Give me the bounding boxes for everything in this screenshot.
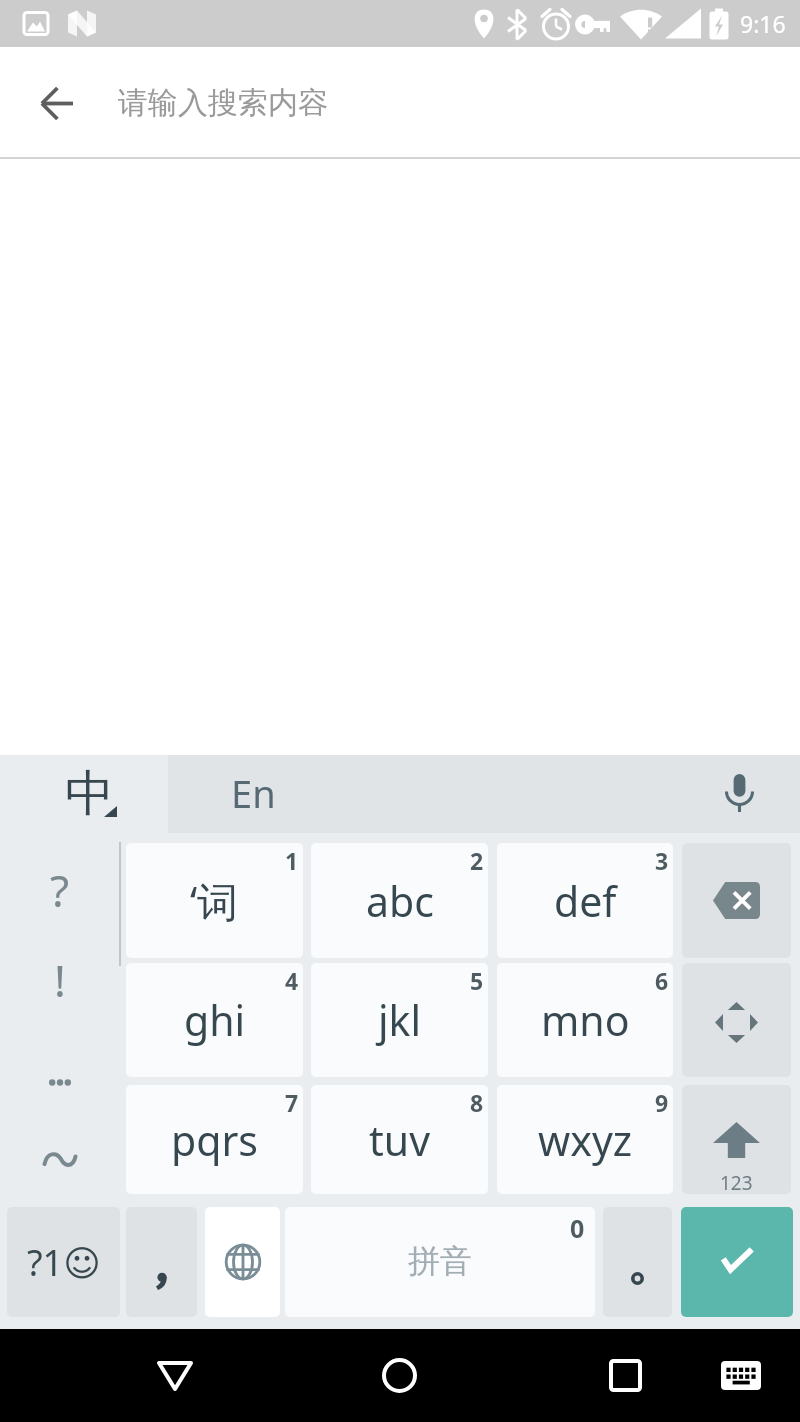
button[interactable]: More symbols (0, 1042, 120, 1122)
staticText: ghi (184, 992, 246, 1048)
staticText: 4 (285, 965, 299, 996)
staticText: jkl (378, 992, 422, 1048)
staticText: 2 (470, 845, 484, 876)
button[interactable] (126, 1207, 197, 1317)
button[interactable]: Backspace (682, 843, 791, 958)
button[interactable]: 9 (497, 1085, 673, 1194)
button[interactable]: Tilde (0, 1120, 120, 1200)
staticText: ! (54, 950, 66, 1010)
button[interactable]: Hide keyboard (120, 1329, 230, 1422)
button[interactable]: Home (344, 1329, 454, 1422)
staticText: En (231, 767, 276, 819)
button[interactable]: 7 (126, 1085, 303, 1194)
staticText: wxyz (538, 1112, 633, 1168)
staticText: 9 (655, 1087, 669, 1118)
button[interactable]: Switch language (205, 1207, 280, 1317)
button[interactable]: ?1☺ (7, 1207, 120, 1317)
button[interactable]: Recents (570, 1329, 680, 1422)
button[interactable]: ? (0, 847, 120, 933)
staticText: 8 (470, 1087, 484, 1118)
button[interactable]: Voice input (710, 764, 768, 822)
button[interactable]: 0 (285, 1207, 595, 1317)
button[interactable] (603, 1207, 672, 1317)
button[interactable]: 中 (0, 755, 168, 833)
staticText: def (554, 873, 617, 929)
button[interactable]: Switch keyboard (696, 1329, 786, 1422)
staticText: 7 (285, 1087, 299, 1118)
staticText: 123 (720, 1170, 753, 1194)
staticText: abc (366, 873, 434, 929)
button[interactable]: Back (0, 47, 112, 159)
button[interactable]: 8 (311, 1085, 488, 1194)
staticText: 拼音 (408, 1241, 472, 1281)
button[interactable]: 5 (311, 963, 488, 1077)
staticText: 1 (285, 845, 299, 876)
staticText: 请输入搜索内容 (118, 84, 328, 122)
staticText: pqrs (171, 1112, 259, 1168)
staticText: ?1☺ (27, 1238, 101, 1287)
button[interactable]: 4 (126, 963, 303, 1077)
staticText: 3 (655, 845, 669, 876)
button[interactable]: En (168, 755, 800, 833)
staticText: 9:16 (740, 8, 786, 39)
button[interactable]: 3 (497, 843, 673, 958)
staticText: 0 (570, 1211, 585, 1245)
other: Switch language (224, 1243, 262, 1281)
staticText: 5 (470, 965, 484, 996)
staticText: tuv (369, 1112, 430, 1168)
staticText: mno (541, 992, 630, 1048)
button[interactable]: Enter (681, 1207, 793, 1317)
staticText: 6 (655, 965, 669, 996)
staticText: 中 (65, 763, 114, 825)
button[interactable]: Shift to numbers (682, 1085, 791, 1194)
button[interactable]: ! (0, 937, 120, 1023)
button[interactable]: 1 (126, 843, 303, 958)
staticText: ‘词 (190, 873, 239, 929)
button[interactable]: 2 (311, 843, 488, 958)
button[interactable]: Move cursor (682, 963, 791, 1077)
button[interactable]: 6 (497, 963, 673, 1077)
staticText: ? (50, 860, 70, 920)
